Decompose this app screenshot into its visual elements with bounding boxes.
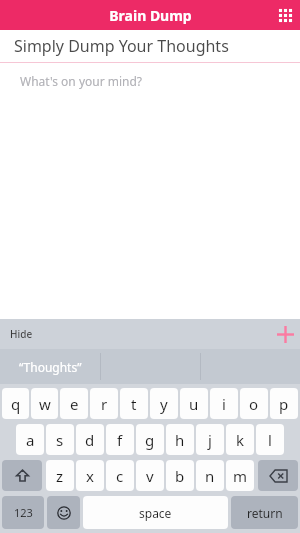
staticText: s	[56, 430, 64, 450]
staticText: i	[222, 394, 226, 414]
staticText: return	[247, 505, 283, 521]
staticText: 123	[14, 505, 33, 520]
staticText: b	[175, 466, 185, 486]
button[interactable]: h	[166, 424, 194, 455]
staticText: l	[268, 430, 272, 450]
staticText: z	[56, 466, 64, 486]
staticText: f	[117, 430, 123, 450]
button[interactable]: Shift	[2, 460, 42, 491]
button[interactable]: Grid menu	[270, 0, 300, 30]
button[interactable]: Emoji	[47, 496, 80, 529]
button[interactable]: Add	[270, 319, 300, 349]
button[interactable]: “Thoughts”	[0, 349, 100, 384]
button[interactable]: u	[180, 388, 208, 419]
staticText: n	[205, 466, 215, 486]
staticText: v	[146, 466, 154, 486]
button[interactable]: m	[226, 460, 254, 491]
button[interactable]: i	[210, 388, 238, 419]
button[interactable]: d	[76, 424, 104, 455]
staticText: m	[233, 466, 248, 486]
button[interactable]: return	[231, 496, 298, 529]
staticText: g	[145, 430, 155, 450]
button[interactable]: a	[16, 424, 44, 455]
staticText: r	[101, 394, 108, 414]
button[interactable]: l	[256, 424, 284, 455]
button[interactable]: b	[166, 460, 194, 491]
staticText: “Thoughts”	[19, 359, 82, 375]
staticText: q	[11, 394, 21, 414]
button[interactable]: Hide	[0, 319, 43, 349]
staticText: k	[236, 430, 245, 450]
staticText: Simply Dump Your Thoughts	[14, 35, 229, 57]
button[interactable]: k	[226, 424, 254, 455]
staticText: h	[175, 430, 185, 450]
button[interactable]: x	[76, 460, 104, 491]
staticText: p	[279, 394, 289, 414]
button[interactable]: w	[31, 388, 58, 419]
staticText: u	[189, 394, 199, 414]
button[interactable]: space	[83, 496, 228, 529]
staticText: What's on your mind?	[20, 73, 143, 89]
button[interactable]: r	[90, 388, 118, 419]
button[interactable]: c	[106, 460, 134, 491]
staticText: y	[160, 394, 168, 414]
staticText: e	[70, 394, 79, 414]
staticText: a	[26, 430, 35, 450]
staticText: x	[86, 466, 94, 486]
staticText: c	[116, 466, 124, 486]
button[interactable]: e	[60, 388, 88, 419]
button[interactable]: g	[136, 424, 164, 455]
button[interactable]: n	[196, 460, 224, 491]
button[interactable]: t	[120, 388, 148, 419]
button[interactable]: 123	[2, 496, 44, 529]
button[interactable]: q	[2, 388, 29, 419]
button[interactable]: o	[240, 388, 268, 419]
staticText: w	[39, 394, 51, 414]
button[interactable]: Backspace	[258, 460, 298, 491]
staticText: Brain Dump	[109, 6, 192, 25]
button[interactable]: v	[136, 460, 164, 491]
staticText: space	[139, 505, 172, 521]
staticText: Hide	[10, 327, 33, 341]
staticText: t	[131, 394, 137, 414]
button[interactable]: y	[150, 388, 178, 419]
button[interactable]: z	[46, 460, 74, 491]
button[interactable]: p	[270, 388, 298, 419]
button[interactable]: j	[196, 424, 224, 455]
staticText: d	[85, 430, 95, 450]
button[interactable]: f	[106, 424, 134, 455]
button[interactable]: s	[46, 424, 74, 455]
staticText: j	[208, 430, 212, 450]
staticText: o	[249, 394, 259, 414]
